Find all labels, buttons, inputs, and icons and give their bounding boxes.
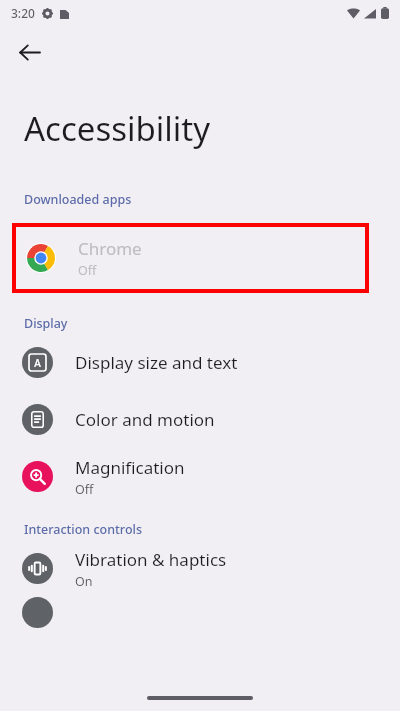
staticText: Accessibility [24,106,211,151]
button[interactable]: Vibration & haptics [0,540,400,597]
staticText: Interaction controls [24,521,142,538]
staticText: Display size and text [75,351,238,374]
staticText: Display [24,315,68,332]
button[interactable]: Magnification [0,448,400,505]
staticText: Chrome [78,237,142,260]
staticText: Vibration & haptics [75,548,227,571]
staticText: Off [78,262,97,279]
staticText: Color and motion [75,408,215,431]
staticText: Magnification [75,456,185,479]
staticText: A [34,356,41,370]
button[interactable] [0,597,400,637]
staticText: 3:20 [11,5,35,21]
button[interactable]: Chrome [16,227,365,289]
staticText: Off [75,481,94,498]
button[interactable]: Color and motion [0,391,400,448]
button[interactable]: A [0,334,400,391]
button[interactable]: Back [8,31,50,73]
staticText: On [75,573,93,590]
staticText: Downloaded apps [24,191,132,208]
